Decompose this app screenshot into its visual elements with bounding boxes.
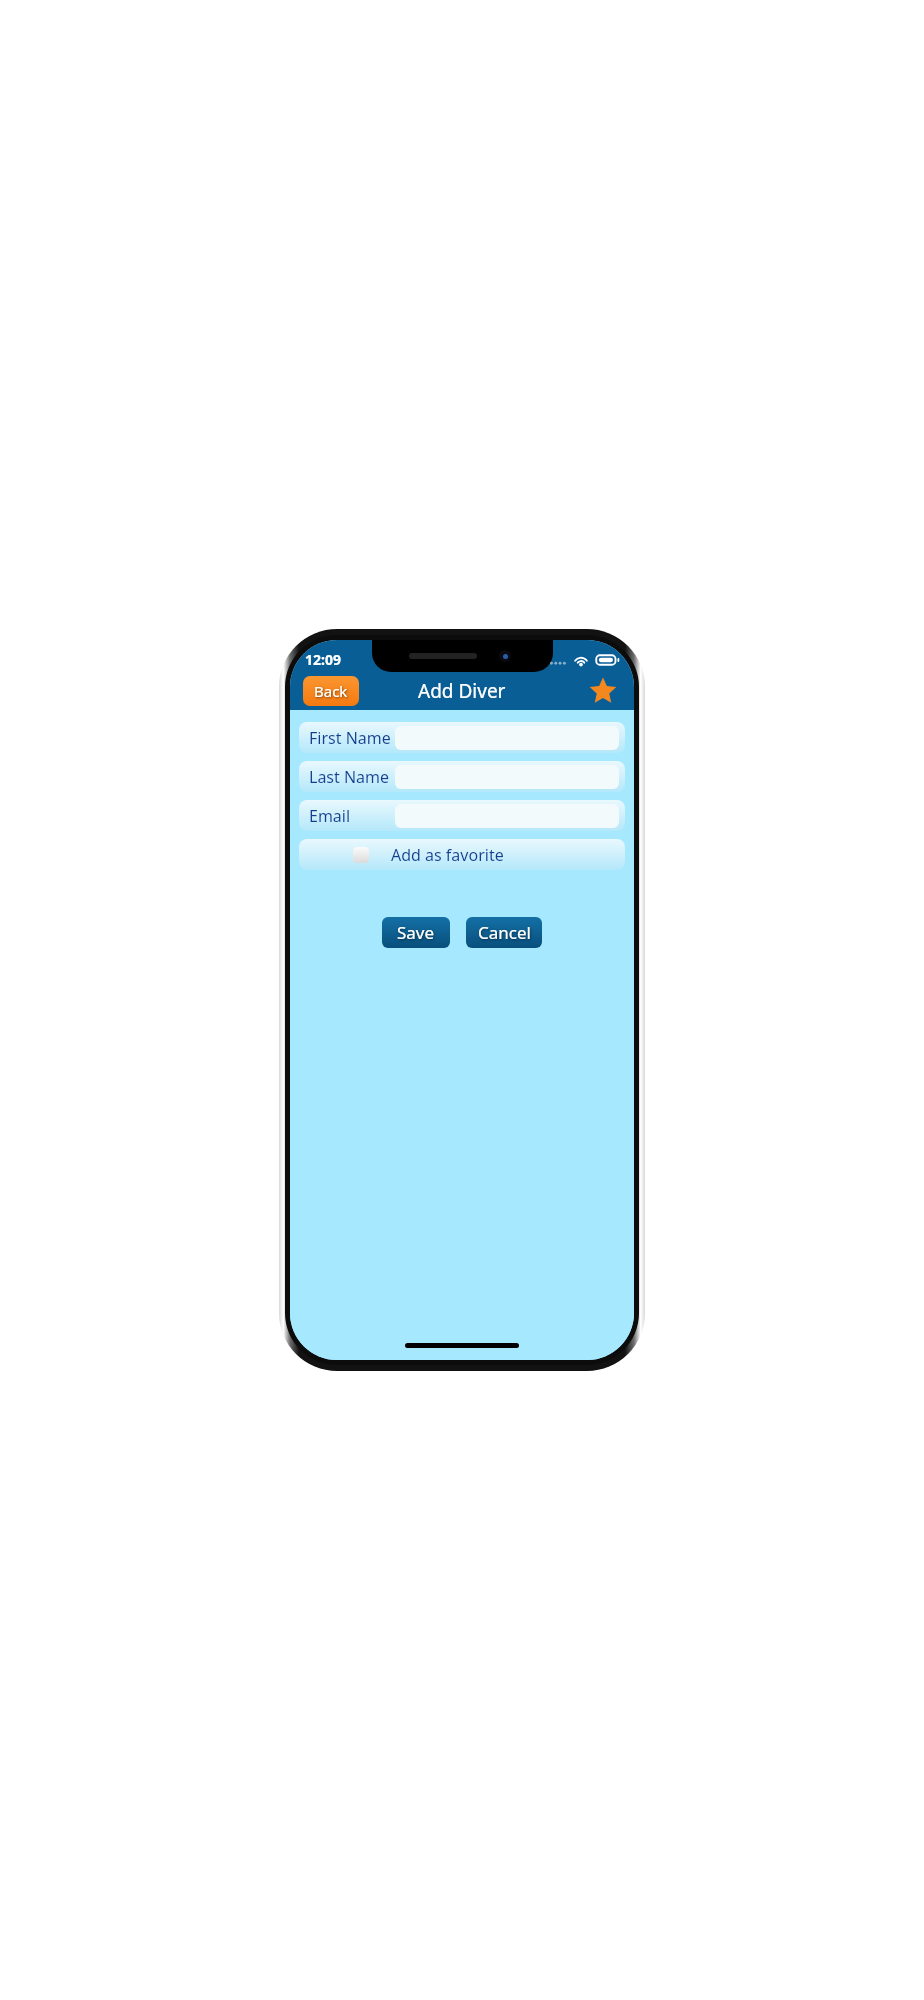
- staticText: Back: [314, 681, 348, 701]
- staticText: First Name: [309, 727, 391, 749]
- staticText: 12:09: [305, 650, 341, 669]
- button[interactable]: Save: [382, 917, 450, 948]
- button[interactable]: Email: [299, 800, 625, 831]
- button[interactable]: Favorite: [584, 672, 622, 710]
- staticText: Add as favorite: [391, 844, 504, 866]
- button[interactable]: Cancel: [466, 917, 542, 948]
- button[interactable]: Add as favorite: [299, 839, 625, 870]
- button[interactable]: Back: [303, 676, 359, 706]
- staticText: Cancel: [478, 921, 531, 944]
- button[interactable]: Last Name: [299, 761, 625, 792]
- button[interactable]: First Name: [299, 722, 625, 753]
- staticText: Last Name: [309, 766, 390, 788]
- staticText: Save: [397, 921, 435, 944]
- staticText: Add Diver: [418, 678, 506, 704]
- staticText: Email: [309, 805, 351, 827]
